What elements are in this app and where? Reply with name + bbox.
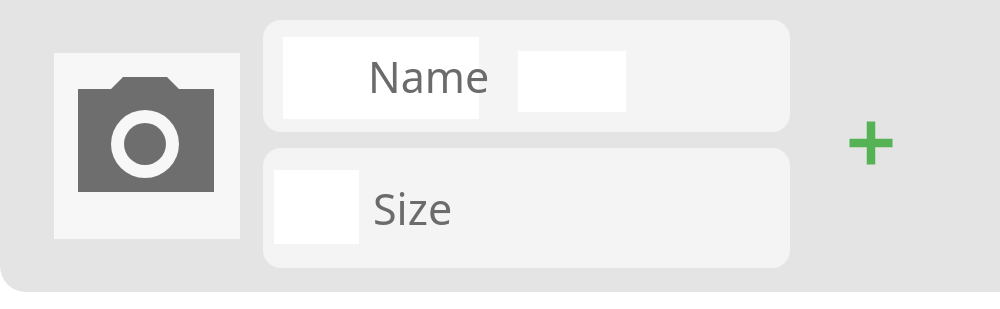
button[interactable]: Name xyxy=(263,20,790,132)
button[interactable]: Size xyxy=(263,148,790,268)
button[interactable]: Add xyxy=(838,110,904,176)
staticText: Size xyxy=(373,179,453,238)
button[interactable]: Pick photo xyxy=(54,53,240,239)
staticText: Name xyxy=(368,47,490,106)
